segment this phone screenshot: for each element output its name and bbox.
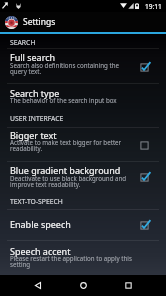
button[interactable]: Unchecked xyxy=(138,139,151,152)
staticText: Full search xyxy=(10,51,56,63)
button[interactable] xyxy=(0,240,166,276)
staticText: Enable speech xyxy=(10,218,71,230)
staticText: SEARCH xyxy=(10,38,36,47)
staticText: Speech accent xyxy=(10,245,71,257)
button[interactable]: Back xyxy=(15,275,60,296)
button[interactable] xyxy=(0,83,166,115)
staticText: TEXT-TO-SPEECH xyxy=(10,197,63,206)
staticText: Search also definitions containing the q… xyxy=(10,61,120,76)
button[interactable]: Home xyxy=(61,275,106,296)
staticText: USER INTERFACE xyxy=(10,114,64,123)
staticText: 19:11 xyxy=(145,2,162,11)
staticText: Deactivate to use black background and i… xyxy=(10,174,127,189)
staticText: Search type xyxy=(10,87,60,99)
button[interactable]: Checked xyxy=(138,61,151,74)
button[interactable] xyxy=(0,127,166,161)
button[interactable] xyxy=(0,209,166,240)
staticText: Bigger text xyxy=(10,129,57,141)
button[interactable] xyxy=(0,48,166,84)
staticText: The behavior of the search input box xyxy=(10,96,117,104)
staticText: Blue gradient background xyxy=(10,164,121,176)
staticText: Activate to make text bigger for better … xyxy=(10,138,122,153)
staticText: Please restart the application to apply … xyxy=(10,254,132,269)
button[interactable]: Checked xyxy=(138,219,151,232)
button[interactable]: Checked xyxy=(138,171,151,184)
button[interactable]: Recent apps xyxy=(106,275,151,296)
button[interactable] xyxy=(0,161,166,195)
staticText: Settings xyxy=(23,16,56,28)
